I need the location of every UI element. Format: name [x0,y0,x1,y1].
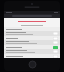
button[interactable]: Disabled [4,54,60,58]
button[interactable]: Disabled [53,41,58,44]
button[interactable]: Disabled [53,50,58,53]
button[interactable]: Disabled [4,40,60,45]
button[interactable] [4,14,60,18]
button[interactable]: Enabled [4,45,60,49]
button[interactable]: Disabled [53,32,58,35]
button[interactable]: Enabled [53,46,58,49]
button[interactable]: Disabled [4,36,60,40]
button[interactable]: Disabled [53,55,58,58]
button[interactable]: Disabled [53,37,58,40]
button[interactable] [4,27,60,31]
button[interactable]: Disabled [4,49,60,54]
button[interactable]: Disabled [4,31,60,36]
